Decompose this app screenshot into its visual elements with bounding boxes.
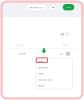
staticText: Download [38,66,47,69]
staticText: 1,200.00 [17,52,25,55]
button[interactable]: Stop next date [36,76,72,83]
staticText: New [66,6,71,8]
button[interactable]: Show list options [50,4,56,11]
staticText: View [38,60,43,63]
button[interactable]: Download [36,64,72,70]
button[interactable]: Delete [36,83,72,89]
staticText: Edit [60,52,64,55]
staticText: Reminder List [29,6,43,9]
staticText: Delete [38,84,44,87]
staticText: Stop next date [38,78,52,81]
button[interactable]: Choose columns [65,32,69,36]
staticText: ACTION [62,44,68,46]
button[interactable]: View [36,58,72,64]
button[interactable]: Download [41,48,46,53]
button[interactable]: Reminder List [26,4,47,11]
button[interactable]: Settings [66,52,70,55]
staticText: Pause [38,72,43,75]
button[interactable]: New [63,4,74,10]
button[interactable]: Pause [36,70,72,77]
staticText: AMOUNT [16,44,23,46]
button[interactable]: Print [61,32,64,36]
button[interactable]: Edit [60,52,64,55]
